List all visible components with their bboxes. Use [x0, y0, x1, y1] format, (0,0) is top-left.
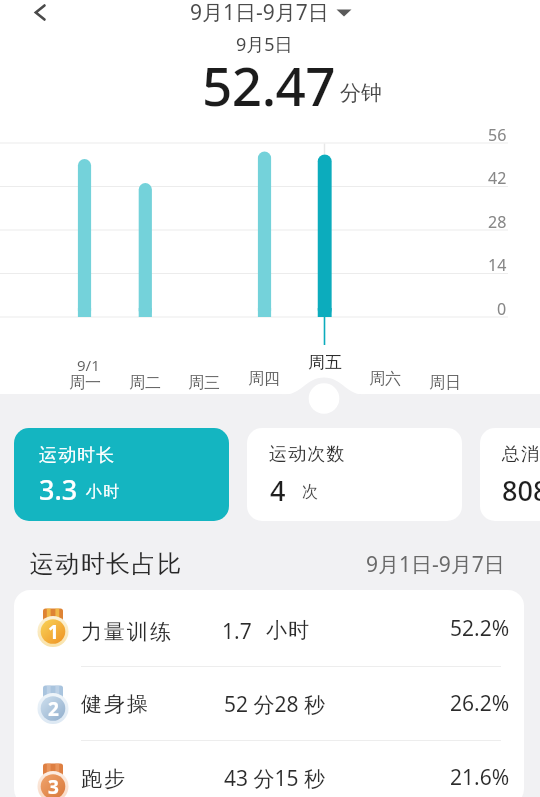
staticText: 周三	[188, 373, 220, 393]
staticText: 28	[488, 211, 507, 233]
staticText: 21.6%	[450, 763, 510, 792]
staticText: 4	[270, 472, 286, 509]
button[interactable]	[14, 668, 524, 741]
button[interactable]	[14, 595, 524, 668]
staticText: 小时	[266, 617, 311, 643]
button[interactable]	[247, 428, 462, 521]
staticText: 跑步	[80, 766, 126, 792]
staticText: 3.3	[39, 471, 78, 508]
staticText: 9月1日-9月7日	[366, 550, 505, 579]
staticText: 运动次数	[269, 443, 346, 466]
staticText: 14	[488, 254, 507, 276]
staticText: 健身操	[80, 691, 149, 717]
staticText: 周一	[69, 373, 101, 393]
staticText: 43 分15 秒	[224, 764, 325, 793]
button[interactable]	[32, 4, 48, 20]
staticText: 52.2%	[450, 614, 510, 643]
staticText: 小时	[85, 482, 120, 502]
staticText: 8086	[502, 472, 540, 509]
staticText: 9月5日	[236, 32, 293, 57]
staticText: 总消耗	[502, 443, 540, 466]
staticText: 52 分28 秒	[224, 690, 325, 719]
staticText: 1	[48, 619, 59, 645]
staticText: 2	[48, 696, 59, 722]
staticText: 周四	[248, 369, 280, 389]
staticText: 42	[488, 167, 507, 189]
staticText: 周日	[429, 373, 461, 393]
staticText: 周五	[308, 352, 342, 373]
staticText: 运动时长	[39, 444, 116, 467]
staticText: 力量训练	[80, 619, 172, 645]
staticText: 52.47	[202, 49, 336, 121]
staticText: 1.7	[222, 617, 252, 646]
staticText: 9月1日-9月7日	[190, 0, 329, 27]
staticText: 9/1	[77, 355, 100, 375]
staticText: 56	[488, 124, 507, 146]
staticText: 3	[48, 774, 59, 797]
staticText: 26.2%	[450, 689, 510, 718]
staticText: 分钟	[340, 80, 382, 106]
button[interactable]	[14, 428, 229, 521]
staticText: 0	[497, 298, 507, 320]
staticText: 周六	[369, 369, 401, 389]
staticText: 运动时长占比	[29, 549, 182, 579]
button[interactable]	[14, 742, 524, 797]
button[interactable]	[480, 428, 540, 521]
staticText: 次	[302, 482, 318, 502]
staticText: 周二	[129, 373, 161, 393]
button[interactable]	[185, 0, 355, 26]
